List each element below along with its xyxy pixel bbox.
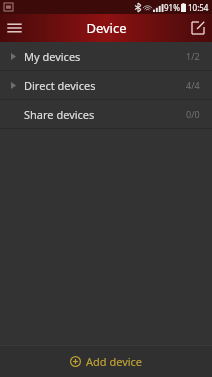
staticText: My devices <box>24 49 81 64</box>
staticText: 91% <box>164 2 180 13</box>
staticText: Direct devices <box>24 78 96 93</box>
staticText: Device <box>86 19 127 37</box>
staticText: Share devices <box>24 107 95 122</box>
button[interactable]: Add device <box>0 345 212 377</box>
button[interactable]: Open navigation menu <box>0 14 28 42</box>
staticText: 1/2 <box>186 50 200 62</box>
button[interactable]: Share devices <box>0 100 212 128</box>
button[interactable]: Direct devices <box>0 71 212 99</box>
button[interactable]: My devices <box>0 42 212 70</box>
staticText: Add device <box>86 354 143 369</box>
button[interactable]: Edit <box>184 14 212 42</box>
staticText: 4/4 <box>186 79 200 91</box>
staticText: 10:54 <box>188 2 209 13</box>
staticText: 0/0 <box>186 108 200 120</box>
